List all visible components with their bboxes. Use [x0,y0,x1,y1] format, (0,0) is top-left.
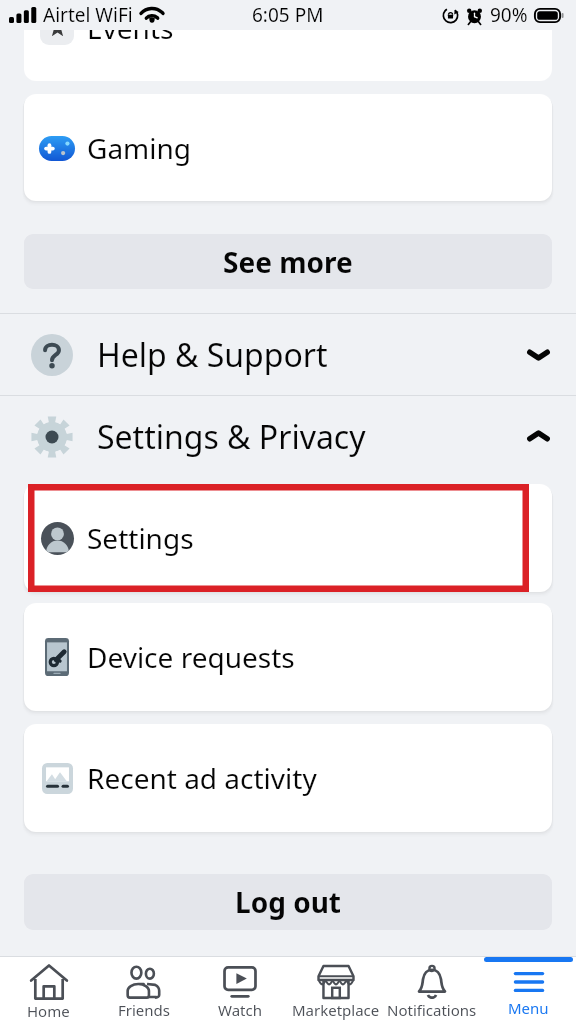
staticText: Log out [235,883,341,921]
button[interactable]: Settings & Privacy [0,396,576,477]
button[interactable]: Device requests [24,603,552,711]
staticText: Device requests [87,638,295,676]
staticText: Home [27,1001,70,1021]
staticText: Marketplace [292,1000,380,1020]
button[interactable]: Watch [192,957,288,1024]
staticText: Help & Support [97,333,527,377]
staticText: Airtel WiFi [43,2,133,28]
button[interactable]: Gaming [24,94,552,201]
button[interactable]: Help & Support [0,314,576,395]
staticText: Settings & Privacy [97,415,527,459]
staticText: See more [223,243,353,281]
button[interactable]: Notifications [384,957,480,1024]
staticText: Settings [87,519,194,557]
staticText: Notifications [387,1000,477,1020]
button[interactable]: Home [0,957,96,1024]
staticText: 90% [490,2,528,28]
button[interactable]: Events [24,30,552,81]
button[interactable]: Settings [24,484,552,592]
button[interactable]: Log out [24,874,552,930]
button[interactable]: Marketplace [288,957,384,1024]
staticText: Gaming [87,129,192,167]
staticText: Menu [508,998,549,1018]
button[interactable]: Friends [96,957,192,1024]
button[interactable]: See more [24,234,552,289]
staticText: Watch [218,1000,262,1020]
staticText: Recent ad activity [87,759,317,797]
button[interactable]: Recent ad activity [24,724,552,832]
staticText: 6:05 PM [252,2,324,28]
staticText: Friends [118,1000,170,1020]
button[interactable]: Menu [480,957,576,1024]
staticText: Events [87,30,174,47]
